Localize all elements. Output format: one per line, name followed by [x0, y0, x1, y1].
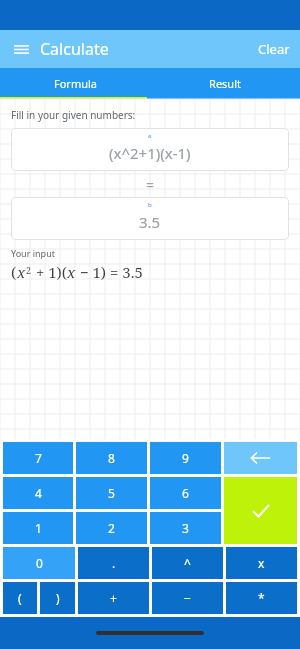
button[interactable]: 8: [76, 442, 147, 474]
button[interactable]: Backspace: [224, 442, 297, 474]
staticText: + 1)(: [32, 262, 67, 282]
staticText: 5: [108, 485, 115, 501]
button[interactable]: 1: [3, 512, 73, 544]
button[interactable]: Result: [150, 68, 300, 99]
staticText: 7: [35, 450, 42, 466]
button[interactable]: 5: [76, 477, 147, 509]
staticText: 2: [26, 264, 32, 276]
staticText: 9: [182, 450, 189, 466]
staticText: 8: [108, 450, 115, 466]
button[interactable]: 9: [150, 442, 221, 474]
button[interactable]: 6: [150, 477, 221, 509]
staticText: Fill in your given numbers:: [11, 108, 136, 122]
staticText: x: [17, 262, 26, 282]
staticText: Clear: [258, 40, 290, 58]
staticText: (: [11, 262, 17, 282]
button[interactable]: *: [226, 582, 297, 614]
staticText: x: [258, 555, 265, 571]
staticText: 3.5: [139, 212, 161, 232]
button[interactable]: .: [78, 547, 149, 579]
staticText: 1: [35, 520, 42, 536]
staticText: =: [146, 175, 155, 194]
staticText: Your input: [11, 247, 55, 259]
staticText: +: [110, 590, 117, 606]
button[interactable]: Clear: [248, 31, 300, 67]
button[interactable]: b: [11, 197, 289, 240]
button[interactable]: 3: [150, 512, 221, 544]
staticText: Result: [209, 76, 241, 91]
staticText: b: [148, 201, 152, 209]
staticText: 6: [182, 485, 189, 501]
staticText: .: [112, 555, 116, 571]
staticText: 3: [182, 520, 189, 536]
staticText: x: [67, 262, 76, 282]
button[interactable]: Submit: [224, 477, 297, 544]
staticText: − 1) = 3.5: [76, 262, 143, 282]
staticText: Formula: [54, 76, 97, 91]
button[interactable]: 0: [3, 547, 75, 579]
button[interactable]: (: [3, 582, 37, 614]
staticText: −: [184, 590, 191, 606]
button[interactable]: 7: [3, 442, 73, 474]
button[interactable]: ): [40, 582, 75, 614]
staticText: (x^2+1)(x-1): [109, 143, 191, 163]
button[interactable]: a: [11, 128, 289, 171]
staticText: 4: [35, 485, 42, 501]
button[interactable]: ^: [152, 547, 223, 579]
staticText: ): [56, 590, 60, 606]
staticText: (: [18, 590, 22, 606]
button[interactable]: +: [78, 582, 149, 614]
staticText: 2: [108, 520, 115, 536]
button[interactable]: 4: [3, 477, 73, 509]
button[interactable]: Open navigation menu: [6, 34, 36, 64]
button[interactable]: 2: [76, 512, 147, 544]
button[interactable]: −: [152, 582, 223, 614]
button[interactable]: x: [226, 547, 297, 579]
staticText: a: [148, 132, 152, 140]
staticText: Calculate: [40, 38, 109, 60]
staticText: ^: [184, 555, 191, 571]
button[interactable]: Formula: [0, 68, 150, 99]
staticText: 0: [36, 555, 43, 571]
staticText: *: [258, 590, 265, 606]
